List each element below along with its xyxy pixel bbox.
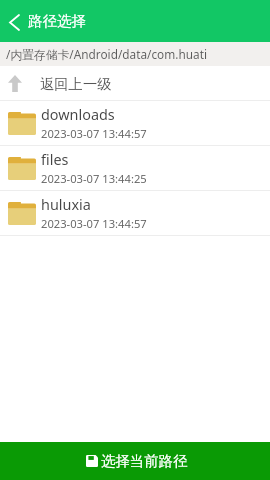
staticText: /内置存储卡/Android/data/com.huati — [6, 46, 207, 62]
staticText: 选择当前路径 — [101, 452, 188, 470]
staticText: 2023-03-07 13:44:57 — [41, 216, 147, 231]
button[interactable]: downloads — [0, 101, 270, 145]
button[interactable]: 返回上一级 — [0, 66, 270, 100]
staticText: 返回上一级 — [40, 75, 112, 93]
staticText: huluxia — [41, 195, 91, 215]
staticText: files — [41, 150, 69, 170]
staticText: 路径选择 — [28, 12, 86, 30]
button[interactable]: 选择当前路径 — [0, 442, 270, 480]
staticText: 2023-03-07 13:44:25 — [41, 171, 147, 186]
button[interactable]: huluxia — [0, 191, 270, 235]
button[interactable]: /内置存储卡/Android/data/com.huati — [0, 42, 270, 66]
staticText: 2023-03-07 13:44:57 — [41, 126, 147, 141]
button[interactable]: Back — [0, 0, 28, 42]
staticText: downloads — [41, 105, 115, 125]
button[interactable]: files — [0, 146, 270, 190]
